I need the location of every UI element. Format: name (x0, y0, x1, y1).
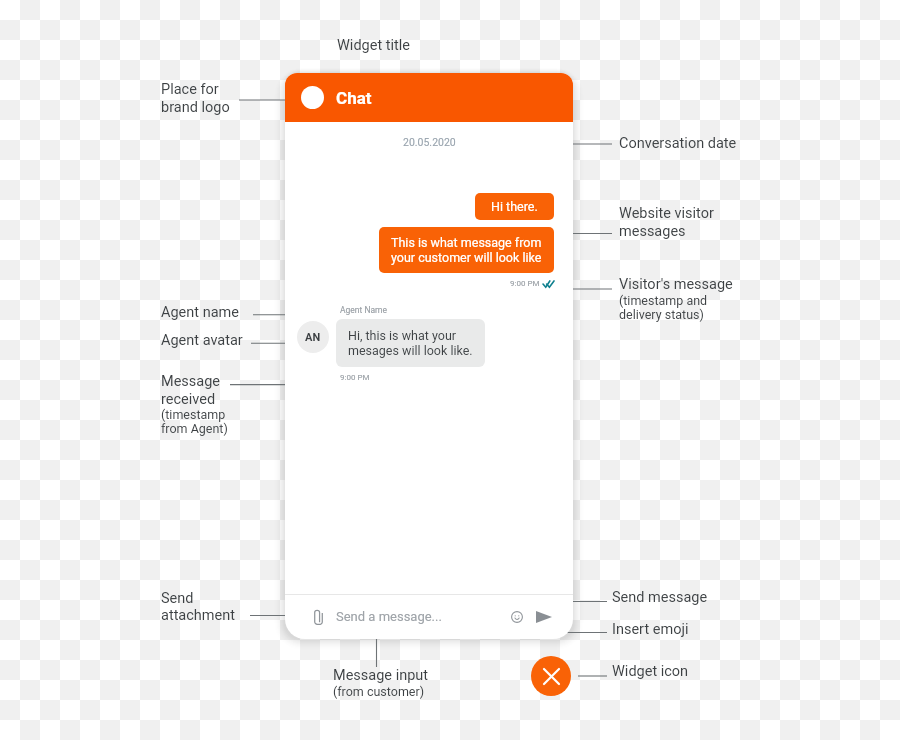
staticText: Hi, this is what your mesages will look … (348, 328, 473, 358)
staticText: 20.05.2020 (403, 136, 456, 148)
staticText: Send a message... (336, 609, 442, 624)
staticText: Insert emoji (612, 621, 689, 638)
staticText: (timestamp from Agent) (161, 407, 228, 436)
staticText: Agent name (161, 304, 239, 321)
button[interactable]: Send attachment (307, 606, 329, 628)
staticText: Message input (333, 667, 429, 684)
button[interactable]: This is what message from your customer … (379, 227, 554, 273)
staticText: Website visitor messages (619, 205, 714, 240)
staticText: (timestamp and delivery status) (619, 293, 708, 322)
staticText: Widget icon (612, 663, 689, 680)
staticText: Agent Name (340, 305, 388, 315)
button[interactable]: Insert emoji (507, 607, 527, 627)
staticText: Message received (161, 373, 221, 407)
button[interactable]: Chat (285, 73, 573, 122)
button[interactable]: Close chat widget (531, 656, 571, 696)
staticText: Agent avatar (161, 332, 243, 349)
staticText: Place for brand logo (161, 81, 230, 116)
staticText: This is what message from your customer … (391, 235, 542, 265)
staticText: Visitor's message (619, 276, 733, 293)
staticText: Send attachment (161, 590, 235, 624)
staticText: (from customer) (333, 684, 425, 699)
staticText: Conversation date (619, 135, 737, 152)
staticText: Send message (612, 589, 708, 606)
button[interactable]: Hi, this is what your mesages will look … (336, 319, 485, 367)
staticText: 9:00 PM (510, 279, 540, 288)
button[interactable]: AN (297, 321, 329, 353)
staticText: Widget title (337, 37, 410, 54)
button[interactable]: Send message (533, 606, 555, 628)
staticText: AN (305, 331, 321, 344)
staticText: Hi there. (491, 199, 538, 214)
staticText: 9:00 PM (340, 373, 370, 382)
staticText: Chat (336, 88, 372, 108)
button[interactable]: Send a message... (336, 609, 507, 624)
button[interactable]: Hi there. (475, 193, 554, 220)
